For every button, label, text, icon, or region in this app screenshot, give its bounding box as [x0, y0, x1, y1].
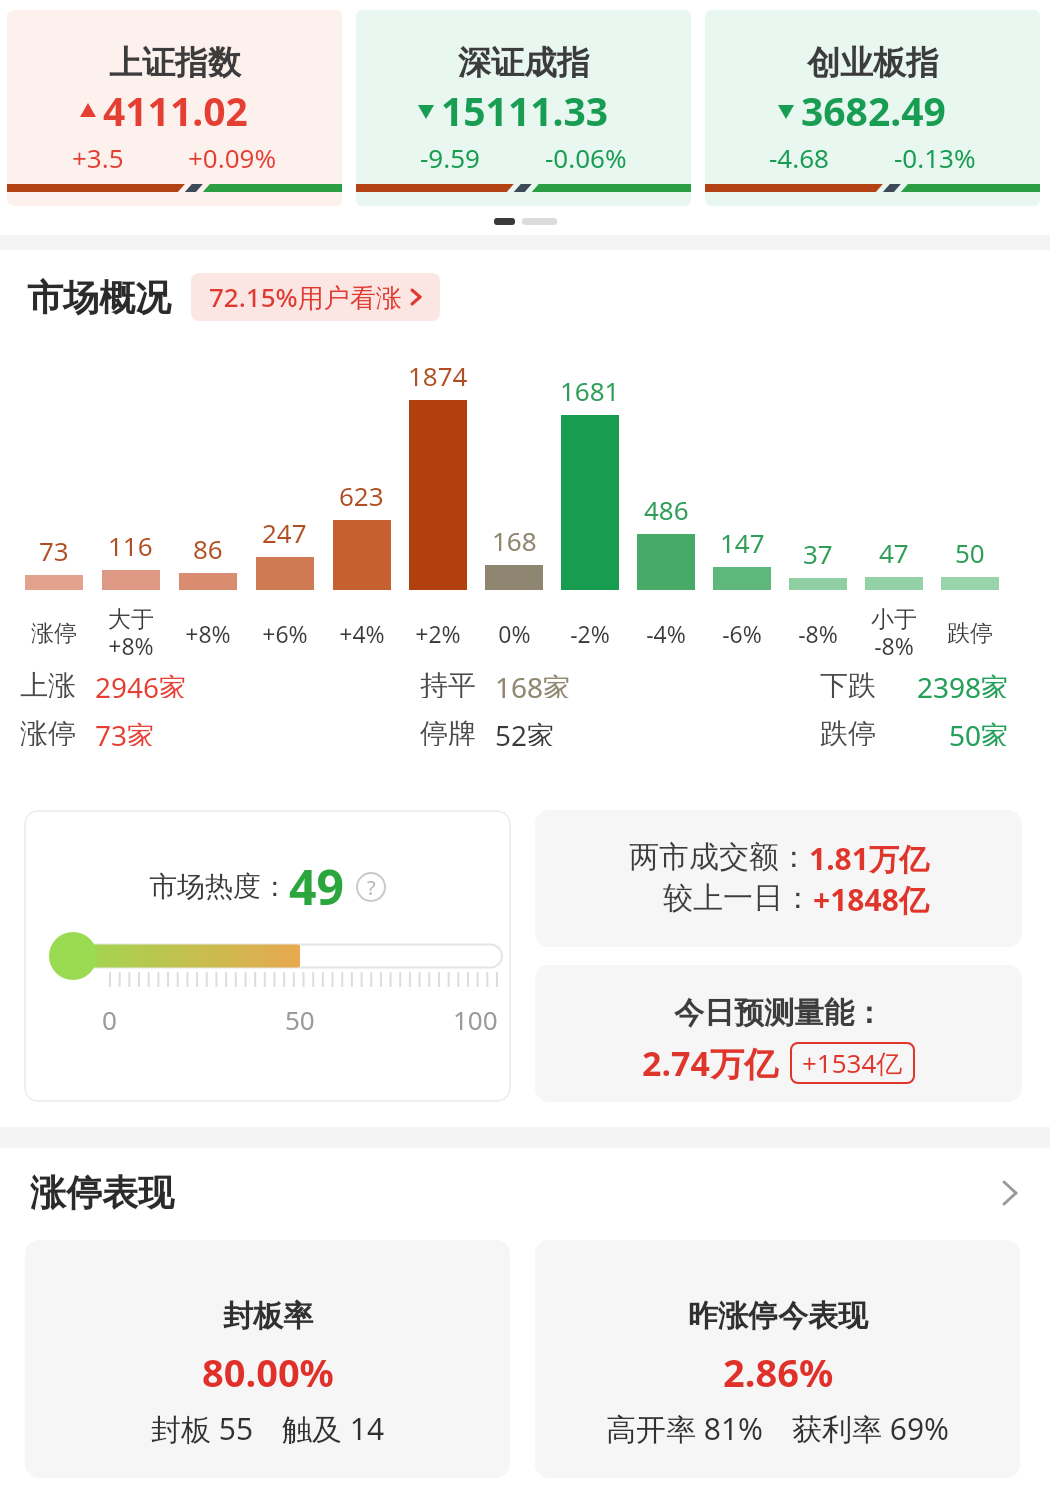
- staticText: 1681: [560, 373, 620, 408]
- staticText: 623: [339, 478, 384, 513]
- staticText: -9.59: [420, 140, 480, 175]
- staticText: 168家: [495, 668, 572, 698]
- staticText: 市场概况: [27, 275, 171, 320]
- staticText: -8%: [798, 618, 838, 649]
- staticText: 3682.49: [801, 84, 946, 137]
- staticText: 80.00%: [202, 1346, 334, 1398]
- staticText: 50家: [949, 716, 1010, 746]
- button[interactable]: 市场热度：: [24, 810, 511, 1102]
- staticText: -4%: [646, 618, 686, 649]
- staticText: 高开率 81%: [606, 1408, 764, 1449]
- staticText: +4%: [339, 618, 385, 649]
- button[interactable]: 封板率: [25, 1240, 510, 1478]
- staticText: 73: [39, 533, 69, 568]
- staticText: -0.13%: [894, 140, 976, 175]
- staticText: 52家: [495, 716, 556, 746]
- staticText: -2%: [570, 618, 610, 649]
- staticText: -6%: [722, 618, 762, 649]
- staticText: 封板 55: [151, 1408, 254, 1449]
- button[interactable]: 今日预测量能：: [535, 965, 1022, 1102]
- button[interactable]: 上证指数: [7, 10, 342, 206]
- staticText: 86: [193, 531, 223, 566]
- staticText: 上证指数: [109, 42, 241, 84]
- staticText: 下跌: [820, 668, 876, 698]
- staticText: +2%: [415, 618, 461, 649]
- button[interactable]: 涨停表现: [0, 1170, 1050, 1215]
- staticText: 47: [879, 535, 909, 570]
- staticText: 昨涨停今表现: [688, 1297, 868, 1335]
- staticText: 0: [102, 1002, 117, 1037]
- staticText: +0.09%: [188, 140, 277, 175]
- staticText: +3.5: [72, 140, 124, 175]
- staticText: +1534亿: [802, 1045, 903, 1081]
- button[interactable]: 昨涨停今表现: [535, 1240, 1020, 1478]
- staticText: 跌停: [947, 619, 993, 648]
- staticText: 4111.02: [103, 84, 248, 137]
- staticText: 0%: [498, 618, 531, 649]
- staticText: 持平: [420, 668, 495, 698]
- staticText: 2.74万亿: [642, 1040, 778, 1086]
- staticText: 1.81万亿: [809, 838, 929, 879]
- staticText: +6%: [262, 618, 308, 649]
- staticText: 触及 14: [282, 1408, 385, 1449]
- staticText: 深证成指: [458, 42, 590, 84]
- staticText: 116: [108, 528, 153, 563]
- staticText: 两市成交额：: [629, 838, 809, 876]
- staticText: 涨停表现: [30, 1170, 174, 1215]
- staticText: 涨停: [31, 619, 77, 648]
- staticText: 2398家: [917, 668, 1010, 698]
- staticText: 50: [955, 535, 985, 570]
- staticText: 50: [285, 1002, 315, 1037]
- button[interactable]: 深证成指: [356, 10, 691, 206]
- staticText: ?: [367, 874, 376, 901]
- staticText: 今日预测量能：: [674, 994, 884, 1032]
- staticText: 涨停: [20, 716, 95, 746]
- button[interactable]: 72.15%用户看涨: [191, 273, 440, 321]
- staticText: 37: [803, 536, 833, 571]
- staticText: 获利率 69%: [792, 1408, 950, 1449]
- staticText: 2.86%: [723, 1346, 834, 1398]
- staticText: 49: [289, 854, 344, 919]
- staticText: +8%: [185, 618, 231, 649]
- staticText: 2946家: [95, 668, 188, 698]
- button[interactable]: 创业板指: [705, 10, 1040, 206]
- staticText: 停牌: [420, 716, 495, 746]
- staticText: -4.68: [769, 140, 829, 175]
- staticText: 跌停: [820, 716, 876, 746]
- staticText: 创业板指: [807, 42, 939, 84]
- staticText: 168: [492, 523, 537, 558]
- staticText: 147: [720, 525, 765, 560]
- staticText: 73家: [95, 716, 156, 746]
- staticText: 较上一日：: [663, 879, 813, 917]
- staticText: 封板率: [223, 1297, 313, 1335]
- staticText: 72.15%用户看涨: [209, 279, 402, 315]
- staticText: 15111.33: [441, 84, 609, 137]
- staticText: 大于 +8%: [108, 605, 154, 662]
- staticText: +1848亿: [813, 879, 929, 920]
- staticText: 247: [262, 515, 307, 550]
- staticText: 1874: [408, 358, 468, 393]
- staticText: 市场热度：: [149, 869, 289, 904]
- staticText: 100: [453, 1002, 498, 1037]
- button[interactable]: 两市成交额：: [535, 810, 1022, 947]
- staticText: 上涨: [20, 668, 95, 698]
- staticText: -0.06%: [545, 140, 627, 175]
- staticText: 小于 -8%: [871, 605, 917, 662]
- staticText: 486: [644, 492, 689, 527]
